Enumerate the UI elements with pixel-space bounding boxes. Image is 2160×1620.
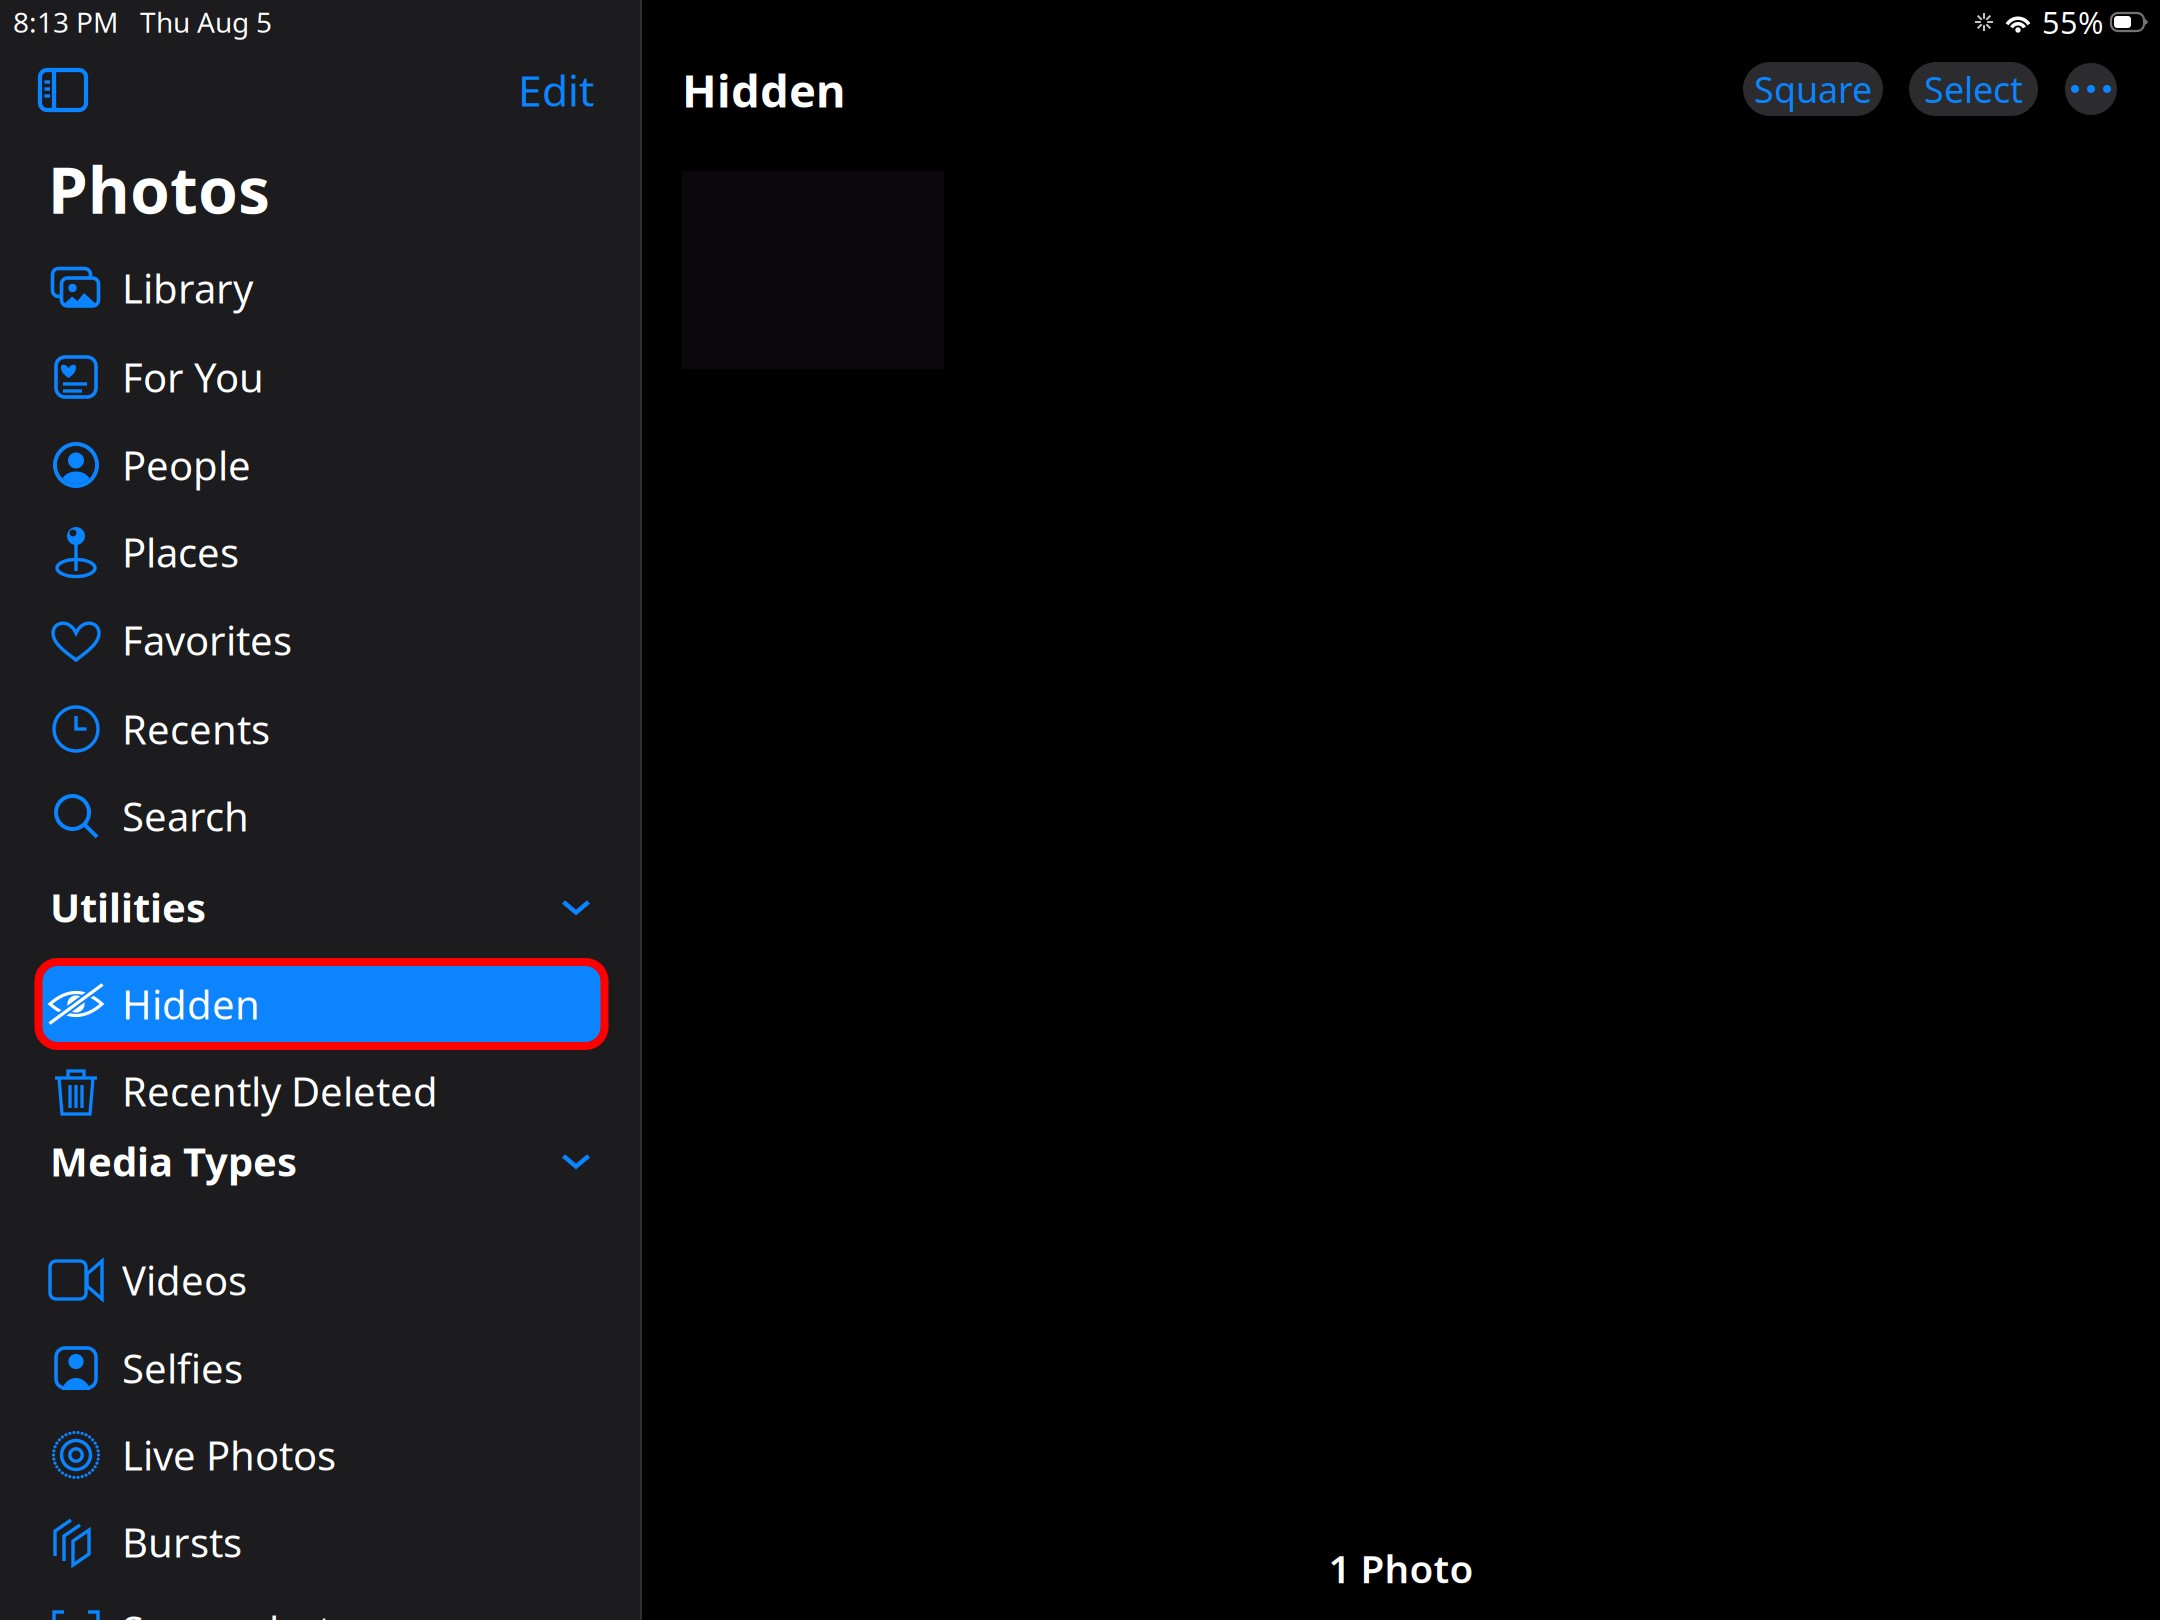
- staticText: People: [122, 438, 251, 491]
- staticText: Hidden: [682, 60, 845, 120]
- staticText: Bursts: [122, 1515, 242, 1568]
- staticText: Selfies: [122, 1341, 243, 1394]
- button[interactable]: Library: [0, 244, 640, 332]
- staticText: Hidden: [122, 977, 260, 1030]
- staticText: Favorites: [122, 613, 292, 666]
- staticText: Thu Aug 5: [140, 3, 272, 41]
- button[interactable]: For You: [0, 333, 640, 421]
- staticText: Media Types: [50, 1134, 297, 1187]
- button[interactable]: Bursts: [0, 1498, 640, 1586]
- staticText: Edit: [518, 62, 594, 118]
- staticText: Search: [122, 789, 249, 842]
- button[interactable]: Collapse Utilities: [548, 879, 604, 935]
- staticText: 8:13 PM: [13, 3, 118, 41]
- staticText: Photos: [48, 146, 270, 231]
- button[interactable]: Edit: [504, 52, 608, 128]
- staticText: 1 Photo: [1328, 1543, 1473, 1594]
- button[interactable]: Hidden: [0, 960, 640, 1048]
- staticText: 55%: [2042, 2, 2103, 42]
- staticText: For You: [122, 350, 264, 403]
- button[interactable]: Toggle Sidebar: [26, 59, 100, 121]
- button[interactable]: Places: [0, 508, 640, 596]
- button[interactable]: Collapse Media Types: [548, 1133, 604, 1189]
- button[interactable]: Videos: [0, 1236, 640, 1324]
- button[interactable]: Recently Deleted: [0, 1047, 640, 1135]
- staticText: Library: [122, 261, 253, 314]
- button[interactable]: People: [0, 421, 640, 509]
- button[interactable]: Selfies: [0, 1324, 640, 1412]
- staticText: Places: [122, 525, 239, 578]
- staticText: Screenshots: [122, 1603, 351, 1620]
- staticText: Recently Deleted: [122, 1064, 438, 1117]
- staticText: Videos: [122, 1253, 247, 1306]
- staticText: Utilities: [50, 880, 206, 933]
- staticText: Select: [1924, 65, 2023, 113]
- button[interactable]: Recents: [0, 685, 640, 773]
- staticText: Live Photos: [122, 1428, 336, 1481]
- button[interactable]: Search: [0, 772, 640, 860]
- button[interactable]: Square: [1743, 62, 1883, 116]
- button[interactable]: More: [2065, 63, 2117, 115]
- button[interactable]: Select: [1909, 62, 2038, 116]
- button[interactable]: Favorites: [0, 596, 640, 684]
- button[interactable]: Live Photos: [0, 1411, 640, 1499]
- staticText: Square: [1754, 65, 1872, 113]
- staticText: Recents: [122, 702, 270, 755]
- button[interactable]: Screenshots: [0, 1586, 640, 1620]
